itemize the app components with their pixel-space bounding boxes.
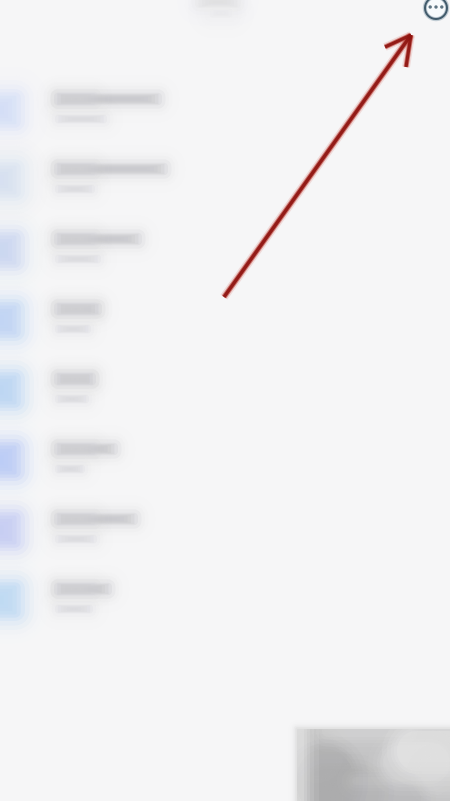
button[interactable] [0, 428, 450, 498]
button[interactable] [0, 568, 450, 638]
button[interactable]: More options [419, 0, 450, 25]
button[interactable] [0, 358, 450, 428]
button[interactable] [0, 148, 450, 218]
button[interactable] [0, 78, 450, 148]
button[interactable] [0, 288, 450, 358]
button[interactable] [0, 498, 450, 568]
button[interactable] [0, 218, 450, 288]
